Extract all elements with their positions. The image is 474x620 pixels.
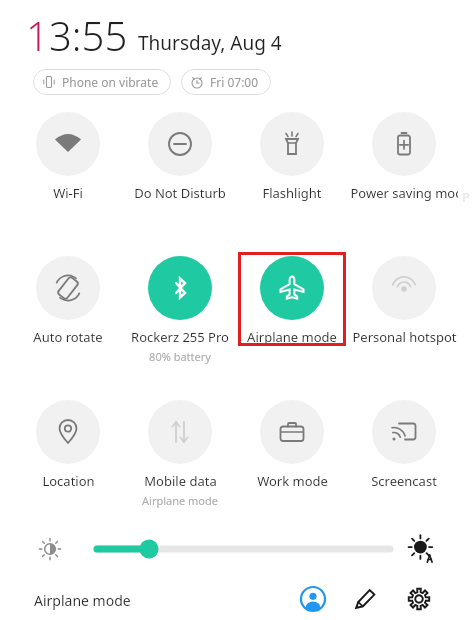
staticText: Fri 07:00 [210, 74, 259, 90]
staticText: Airplane mode [247, 328, 337, 346]
staticText: 3:55 [49, 8, 128, 62]
staticText: Airplane mode [142, 493, 218, 508]
staticText: Do Not Disturb [134, 184, 226, 202]
button[interactable]: Phone on vibrate [33, 69, 171, 95]
button[interactable]: Rockerz 255 Pro [126, 250, 234, 358]
button[interactable]: Fri 07:00 [181, 69, 271, 95]
button[interactable]: Location [14, 394, 122, 486]
staticText: Flashlight [262, 184, 322, 202]
staticText: Airplane mode [34, 591, 131, 610]
staticText: Mobile data [144, 472, 217, 490]
staticText: Phone on vibrate [62, 74, 159, 90]
staticText: Location [42, 472, 95, 490]
button[interactable]: Auto brightness [406, 533, 438, 565]
staticText: 1 [26, 8, 49, 62]
button[interactable]: Personal hotspot [350, 250, 458, 342]
button[interactable]: Airplane mode [30, 588, 135, 613]
staticText: 80% battery [149, 349, 211, 364]
button[interactable]: Flashlight [238, 106, 346, 198]
button[interactable]: Edit [352, 586, 378, 612]
button[interactable]: Auto rotate [14, 250, 122, 342]
button[interactable]: Settings [406, 586, 432, 612]
staticText: Screencast [371, 472, 437, 490]
button[interactable]: Do Not Disturb [126, 106, 234, 198]
button[interactable]: Airplane mode [238, 250, 346, 342]
staticText: Thursday, Aug 4 [138, 30, 282, 56]
button[interactable]: Work mode [238, 394, 346, 486]
button[interactable]: Brightness [90, 533, 400, 565]
staticText: Rockerz 255 Pro [131, 328, 229, 346]
button[interactable]: Lower brightness [36, 535, 64, 563]
button[interactable]: Account [300, 586, 326, 612]
button[interactable]: Wi-Fi [14, 106, 122, 198]
staticText: Auto rotate [33, 328, 103, 346]
staticText: Power saving mode [350, 184, 458, 202]
staticText: P [462, 188, 470, 206]
button[interactable]: Power saving mode [350, 106, 458, 198]
button[interactable]: Screencast [350, 394, 458, 486]
staticText: Work mode [257, 472, 328, 490]
staticText: Personal hotspot [352, 328, 457, 346]
staticText: Wi-Fi [53, 184, 83, 202]
button[interactable]: Mobile data [126, 394, 234, 502]
